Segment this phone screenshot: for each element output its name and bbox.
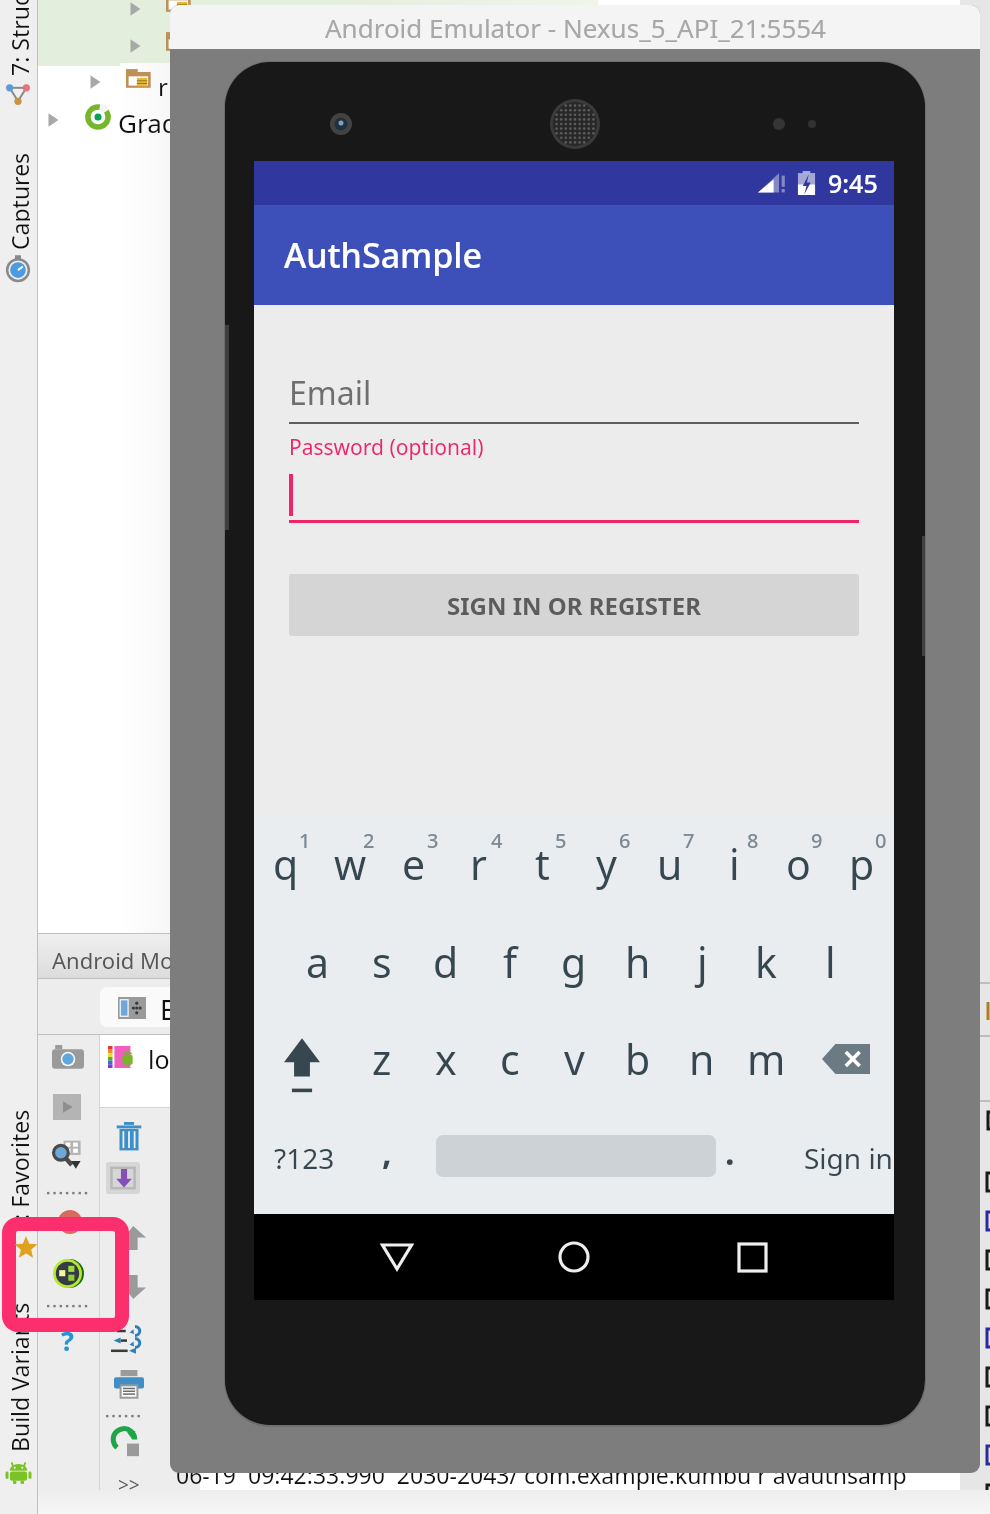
staticText: Email: [289, 371, 372, 415]
staticText: 0: [875, 827, 887, 854]
staticText: ?: [61, 1322, 74, 1359]
staticText: >>: [118, 1472, 140, 1498]
staticText: i: [729, 836, 740, 892]
staticText: ,: [382, 1129, 392, 1175]
button[interactable]: [100, 987, 200, 1027]
staticText: AuthSample: [284, 232, 483, 278]
staticText: Grad: [118, 105, 178, 140]
staticText: e: [402, 836, 426, 892]
staticText: x: [435, 1031, 457, 1087]
button[interactable]: Home: [539, 1222, 609, 1292]
button[interactable]: l: [798, 918, 862, 1016]
staticText: w: [334, 836, 367, 892]
button[interactable]: s: [350, 918, 414, 1016]
staticText: 3: [427, 827, 439, 854]
staticText: 06-19 09:42:33.990 2030-2043/ com.exampl…: [176, 1459, 907, 1490]
staticText: 8: [747, 827, 759, 854]
staticText: 7: [683, 827, 695, 854]
button[interactable]: x: [414, 1016, 478, 1114]
staticText: r: [158, 70, 168, 103]
button[interactable]: ?123: [254, 1114, 355, 1210]
staticText: 2: [363, 827, 375, 854]
button[interactable]: ,: [355, 1114, 418, 1210]
button[interactable]: Back: [362, 1222, 432, 1292]
button[interactable]: [418, 1114, 698, 1210]
staticText: Android Mo: [52, 945, 174, 975]
staticText: 7: Struc: [4, 0, 30, 76]
button[interactable]: SIGN IN OR REGISTER: [289, 574, 859, 636]
button[interactable]: v: [542, 1016, 606, 1114]
button[interactable]: 0: [830, 818, 894, 918]
button[interactable]: 4: [446, 818, 510, 918]
button[interactable]: 6: [574, 818, 638, 918]
staticText: lo: [148, 1042, 170, 1076]
staticText: 6: [619, 827, 631, 854]
staticText: Password (optional): [289, 433, 484, 462]
staticText: f: [503, 934, 518, 990]
button[interactable]: k: [734, 918, 798, 1016]
staticText: r: [470, 836, 487, 892]
button[interactable]: g: [542, 918, 606, 1016]
button[interactable]: 1: [254, 818, 318, 918]
staticText: 1: [299, 827, 311, 854]
button[interactable]: h: [606, 918, 670, 1016]
staticText: a: [306, 934, 330, 990]
staticText: Build Variants: [4, 1302, 30, 1452]
staticText: Android Emulator - Nexus_5_API_21:5554: [325, 10, 826, 45]
staticText: : Favorites: [4, 1109, 30, 1220]
staticText: z: [372, 1031, 392, 1087]
button[interactable]: j: [670, 918, 734, 1016]
staticText: s: [372, 934, 392, 990]
staticText: Captures: [4, 152, 30, 250]
staticText: 4: [491, 827, 503, 854]
button[interactable]: Shift: [254, 1016, 350, 1114]
staticText: E: [160, 991, 176, 1028]
staticText: 9:45: [828, 166, 878, 200]
button[interactable]: Sign in: [761, 1114, 894, 1210]
button[interactable]: n: [670, 1016, 734, 1114]
button[interactable]: z: [350, 1016, 414, 1114]
button[interactable]: m: [734, 1016, 798, 1114]
button[interactable]: 9: [766, 818, 830, 918]
staticText: n: [689, 1031, 715, 1087]
staticText: q: [273, 836, 299, 892]
button[interactable]: 7: [638, 818, 702, 918]
staticText: 9: [811, 827, 823, 854]
staticText: b: [625, 1031, 651, 1087]
staticText: p: [849, 836, 875, 892]
button[interactable]: Recents: [717, 1222, 787, 1292]
staticText: g: [561, 934, 587, 990]
button[interactable]: c: [478, 1016, 542, 1114]
staticText: 5: [555, 827, 567, 854]
button[interactable]: 2: [318, 818, 382, 918]
button[interactable]: Backspace: [798, 1016, 894, 1114]
button[interactable]: 3: [382, 818, 446, 918]
button[interactable]: .: [698, 1114, 761, 1210]
staticText: y: [596, 836, 617, 892]
button[interactable]: b: [606, 1016, 670, 1114]
button[interactable]: 8: [702, 818, 766, 918]
staticText: ?123: [274, 1139, 335, 1177]
staticText: SIGN IN OR REGISTER: [447, 589, 701, 622]
staticText: k: [755, 934, 777, 990]
staticText: v: [564, 1031, 585, 1087]
button[interactable]: f: [478, 918, 542, 1016]
staticText: Sign in: [804, 1139, 893, 1177]
staticText: t: [535, 836, 550, 892]
staticText: m: [747, 1031, 786, 1087]
staticText: h: [625, 934, 651, 990]
staticText: o: [786, 836, 811, 892]
staticText: c: [500, 1031, 520, 1087]
button[interactable]: a: [286, 918, 350, 1016]
button[interactable]: 5: [510, 818, 574, 918]
button[interactable]: d: [414, 918, 478, 1016]
staticText: u: [657, 836, 683, 892]
staticText: j: [697, 934, 708, 990]
staticText: .: [725, 1129, 735, 1175]
staticText: d: [433, 934, 459, 990]
staticText: l: [825, 934, 836, 990]
